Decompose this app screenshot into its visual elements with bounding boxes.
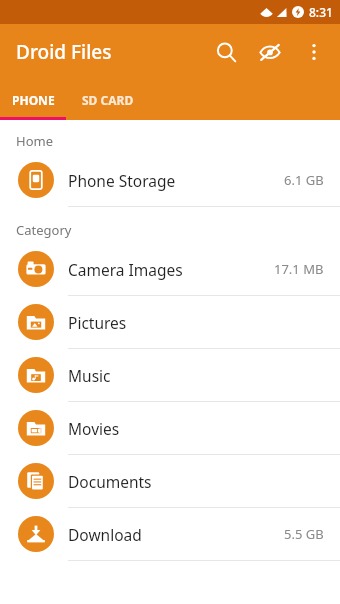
staticText: Droid Files <box>16 39 112 65</box>
staticText: PHONE <box>12 92 55 108</box>
staticText: Category <box>16 221 72 239</box>
staticText: Download <box>68 524 284 545</box>
button[interactable]: Documents <box>0 455 340 508</box>
staticText: Documents <box>68 471 324 492</box>
staticText: Movies <box>68 418 324 439</box>
staticText: 8:31 <box>309 4 333 20</box>
staticText: 17.1 MB <box>274 260 324 278</box>
staticText: Pictures <box>68 312 324 333</box>
button[interactable]: Phone Storage <box>0 154 340 207</box>
button[interactable]: More options <box>292 30 336 74</box>
staticText: Phone Storage <box>68 170 284 191</box>
button[interactable]: PHONE <box>0 80 66 120</box>
button[interactable]: SD CARD <box>66 80 150 120</box>
button[interactable]: Toggle hidden files <box>248 30 292 74</box>
staticText: Camera Images <box>68 259 274 280</box>
button[interactable]: Movies <box>0 402 340 455</box>
button[interactable]: Camera Images <box>0 243 340 296</box>
staticText: Music <box>68 365 324 386</box>
button[interactable]: Search <box>204 30 248 74</box>
button[interactable]: Music <box>0 349 340 402</box>
staticText: 5.5 GB <box>284 525 324 543</box>
staticText: 6.1 GB <box>284 171 324 189</box>
button[interactable]: Pictures <box>0 296 340 349</box>
staticText: Home <box>16 132 53 150</box>
button[interactable]: Download <box>0 508 340 561</box>
staticText: SD CARD <box>82 92 134 108</box>
